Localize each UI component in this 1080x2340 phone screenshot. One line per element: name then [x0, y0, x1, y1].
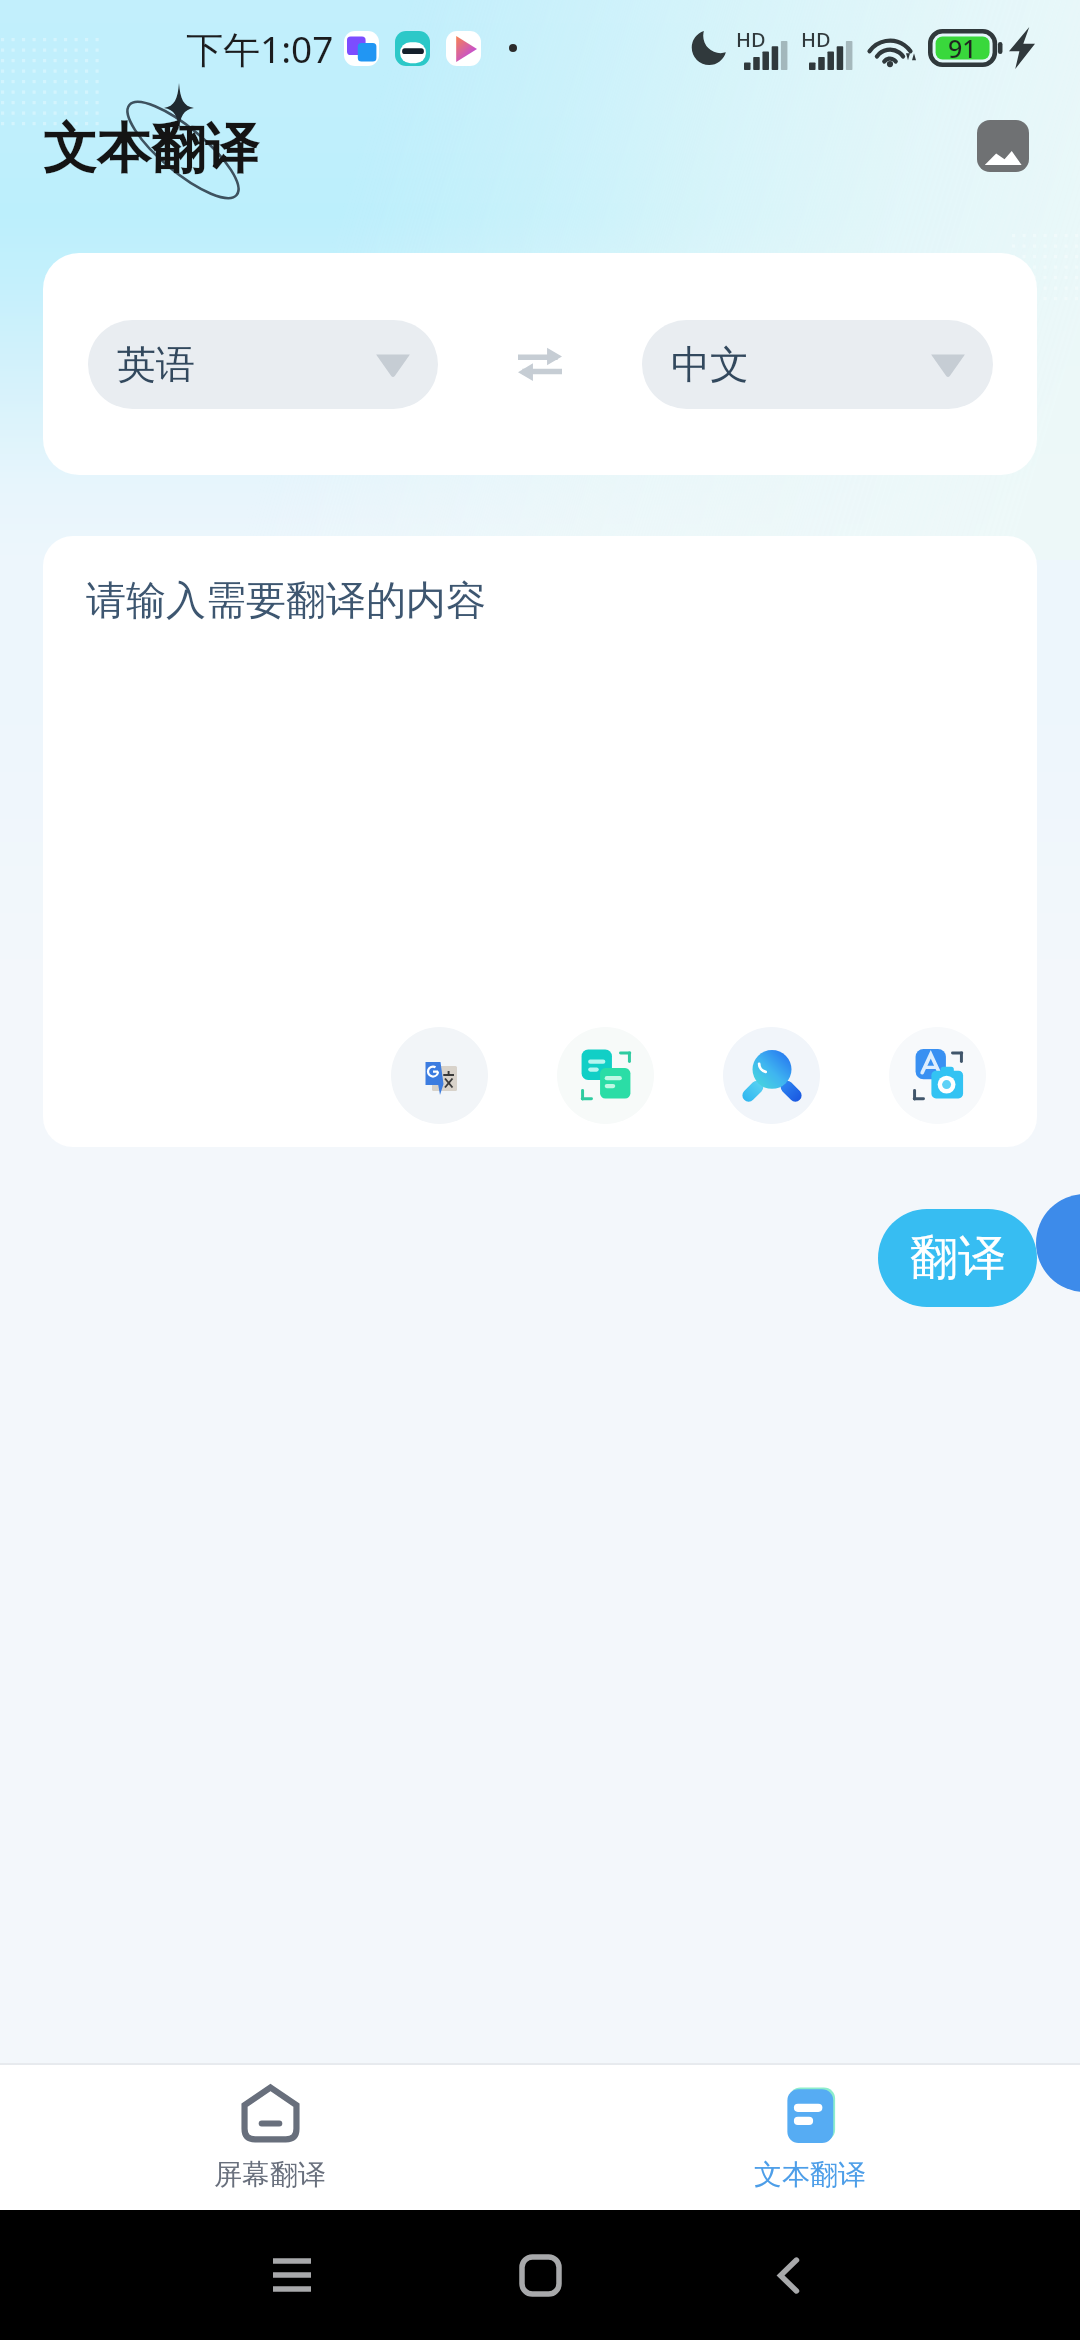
staticText: 中文: [671, 340, 749, 389]
staticText: HD: [736, 26, 766, 53]
button[interactable]: Search translate: [723, 1027, 820, 1124]
staticText: 屏幕翻译: [214, 2157, 326, 2192]
staticText: 英语: [117, 340, 195, 389]
button[interactable]: 中文: [642, 320, 993, 409]
staticText: 文本翻译: [43, 115, 259, 183]
button[interactable]: 屏幕翻译: [0, 2065, 540, 2210]
staticText: HD: [801, 26, 831, 53]
button[interactable]: Google Translate: [391, 1027, 488, 1124]
button[interactable]: Image: [977, 120, 1029, 172]
staticText: 请输入需要翻译的内容: [86, 575, 486, 625]
button[interactable]: 英语: [88, 320, 438, 409]
button[interactable]: Home: [490, 2225, 590, 2325]
button[interactable]: Quick action: [1036, 1194, 1080, 1292]
button[interactable]: Recents: [242, 2225, 342, 2325]
button[interactable]: Camera translate: [889, 1027, 986, 1124]
button[interactable]: 翻译: [878, 1209, 1037, 1307]
button[interactable]: 文本翻译: [540, 2065, 1080, 2210]
staticText: 下午1:07: [186, 23, 334, 74]
staticText: 文本翻译: [754, 2157, 866, 2192]
staticText: 翻译: [910, 1228, 1006, 1288]
staticText: 91: [948, 31, 977, 65]
button[interactable]: Back: [738, 2225, 838, 2325]
button[interactable]: Document translate: [557, 1027, 654, 1124]
